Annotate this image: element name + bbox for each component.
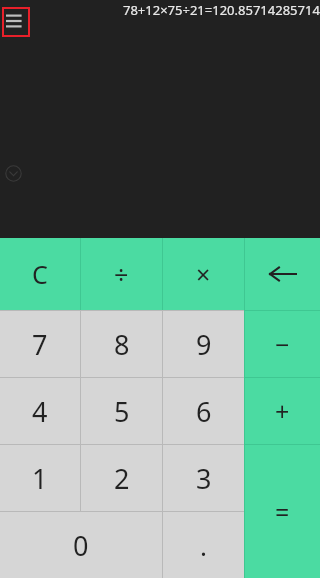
button[interactable]: 1 <box>0 445 80 511</box>
staticText: 0 <box>73 527 89 564</box>
staticText: × <box>196 257 211 291</box>
button[interactable]: 4 <box>0 378 80 444</box>
staticText: 78+12×75÷21=120.85714285714 <box>123 1 320 19</box>
button[interactable]: = <box>245 445 320 578</box>
staticText: 5 <box>114 393 130 430</box>
button[interactable]: 9 <box>163 311 244 377</box>
staticText: ÷ <box>114 257 129 291</box>
button[interactable]: 2 <box>81 445 162 511</box>
staticText: . <box>200 528 207 563</box>
button[interactable]: × <box>163 238 244 310</box>
button[interactable]: ÷ <box>81 238 162 310</box>
button[interactable]: 3 <box>163 445 244 511</box>
staticText: = <box>275 495 290 529</box>
staticText: 6 <box>196 393 212 430</box>
staticText: 1 <box>32 460 48 497</box>
staticText: + <box>275 394 290 428</box>
button[interactable]: 7 <box>0 311 80 377</box>
button[interactable]: Backspace <box>245 238 320 310</box>
button[interactable]: . <box>163 512 244 578</box>
staticText: − <box>275 327 290 361</box>
staticText: 4 <box>32 393 48 430</box>
button[interactable]: 0 <box>0 512 162 578</box>
staticText: C <box>32 257 48 291</box>
button[interactable]: 8 <box>81 311 162 377</box>
button[interactable]: 6 <box>163 378 244 444</box>
staticText: 2 <box>114 460 130 497</box>
staticText: 8 <box>114 326 130 363</box>
button[interactable]: C <box>0 238 80 310</box>
staticText: 7 <box>32 326 48 363</box>
button[interactable]: 5 <box>81 378 162 444</box>
button[interactable]: Expand history <box>5 165 22 182</box>
button[interactable]: − <box>245 311 320 377</box>
staticText: 9 <box>196 326 212 363</box>
staticText: 3 <box>196 460 212 497</box>
button[interactable]: Menu <box>6 12 26 30</box>
button[interactable]: + <box>245 378 320 444</box>
